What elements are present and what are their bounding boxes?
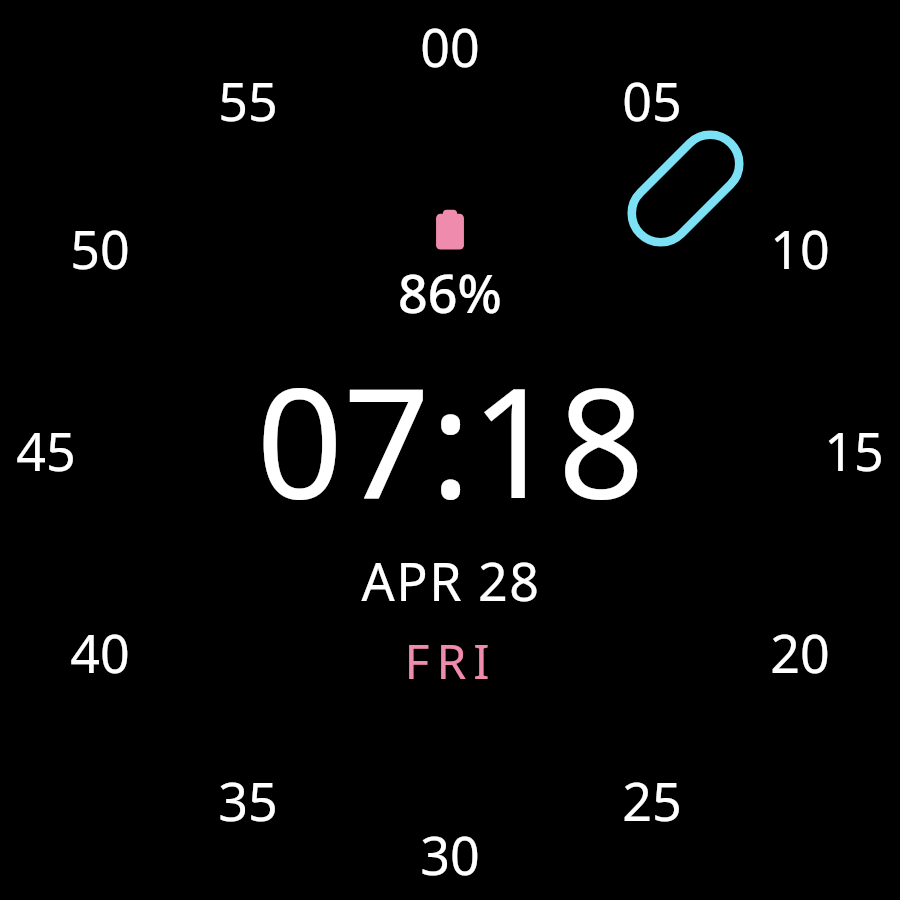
button[interactable]: 50 xyxy=(70,213,130,284)
other: Minute hand xyxy=(0,0,900,900)
staticText: FRI xyxy=(404,628,497,693)
button[interactable]: 07:18 xyxy=(256,336,645,693)
button[interactable]: 35 xyxy=(218,765,278,836)
button[interactable]: 40 xyxy=(70,617,130,688)
staticText: 50 xyxy=(70,213,130,284)
button[interactable]: 05 xyxy=(622,65,682,136)
button[interactable]: 15 xyxy=(824,415,884,486)
button[interactable]: 45 xyxy=(16,415,76,486)
button[interactable]: 00 xyxy=(420,11,480,82)
staticText: 55 xyxy=(218,65,278,136)
staticText: 00 xyxy=(420,11,480,82)
staticText: 15 xyxy=(824,415,884,486)
staticText: 45 xyxy=(16,415,76,486)
button[interactable]: 25 xyxy=(622,765,682,836)
staticText: 07:18 xyxy=(256,336,645,543)
staticText: 05 xyxy=(622,65,682,136)
staticText: APR 28 xyxy=(361,545,541,616)
staticText: 10 xyxy=(770,213,830,284)
staticText: 86% xyxy=(398,257,502,328)
staticText: 30 xyxy=(420,819,480,890)
button[interactable]: Battery 86 percent xyxy=(375,205,525,345)
button[interactable]: 00 xyxy=(0,0,900,900)
staticText: 35 xyxy=(218,765,278,836)
staticText: 20 xyxy=(770,617,830,688)
button[interactable]: 20 xyxy=(770,617,830,688)
staticText: 25 xyxy=(622,765,682,836)
button[interactable]: 55 xyxy=(218,65,278,136)
button[interactable]: 10 xyxy=(770,213,830,284)
button[interactable]: 30 xyxy=(420,819,480,890)
staticText: 40 xyxy=(70,617,130,688)
